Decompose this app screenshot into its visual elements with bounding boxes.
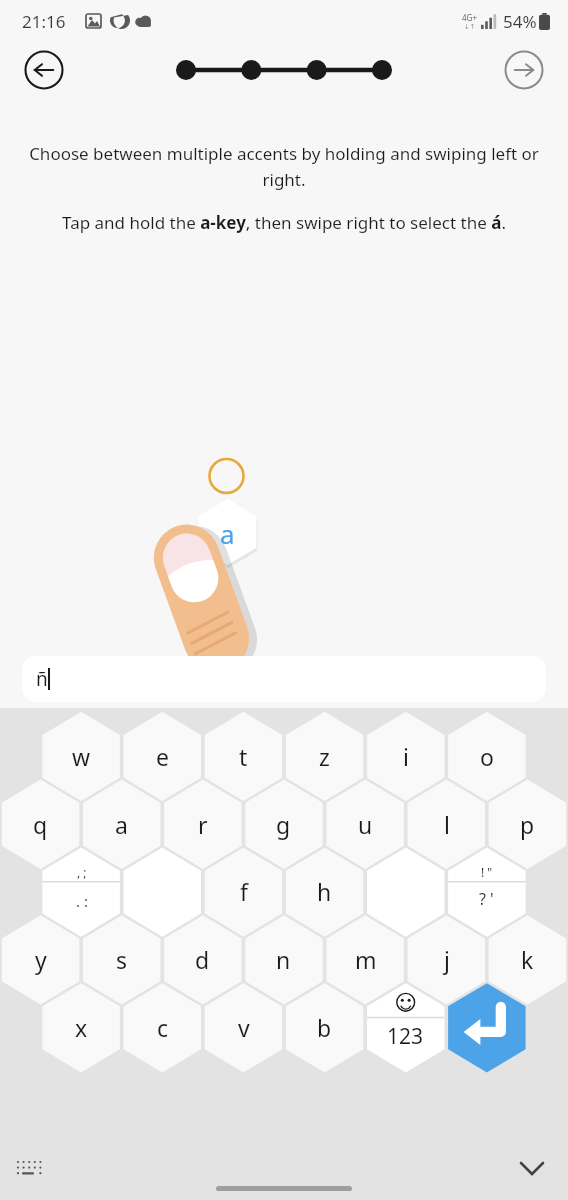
button[interactable]: u xyxy=(325,780,406,869)
button[interactable]: Hide keyboard xyxy=(512,1148,552,1188)
button[interactable]: v xyxy=(203,983,284,1072)
button[interactable]: q xyxy=(0,780,81,869)
staticText: 21:16 xyxy=(22,10,66,33)
button[interactable]: Back xyxy=(24,50,64,90)
staticText: 54% xyxy=(503,10,537,33)
button[interactable]: 123 xyxy=(365,983,446,1072)
button[interactable] xyxy=(41,847,122,936)
staticText: d xyxy=(195,944,210,975)
staticText: a xyxy=(220,516,235,550)
button[interactable]: h xyxy=(284,847,365,936)
staticText: 123 xyxy=(387,1022,424,1051)
button[interactable]: Switch keyboard xyxy=(12,1150,50,1188)
staticText: ! " xyxy=(481,864,493,880)
staticText: , ; xyxy=(77,864,87,880)
staticText: s xyxy=(116,944,128,975)
staticText: r xyxy=(198,809,208,840)
button[interactable]: y xyxy=(0,915,81,1004)
button[interactable]: j xyxy=(406,915,487,1004)
staticText: j xyxy=(444,944,450,975)
button[interactable]: c xyxy=(122,983,203,1072)
button[interactable]: x xyxy=(41,983,122,1072)
button[interactable]: t xyxy=(203,712,284,801)
button[interactable]: ñ xyxy=(22,656,546,702)
staticText: w xyxy=(72,741,91,772)
staticText: i xyxy=(403,741,409,772)
staticText: 4G+ xyxy=(462,12,477,23)
button[interactable]: Enter xyxy=(446,983,527,1072)
staticText: ↓↑ xyxy=(464,23,476,31)
button[interactable]: z xyxy=(284,712,365,801)
button[interactable]: i xyxy=(365,712,446,801)
staticText: y xyxy=(35,944,47,975)
button[interactable]: e xyxy=(122,712,203,801)
staticText: z xyxy=(319,741,330,772)
button[interactable]: k xyxy=(487,915,568,1004)
button[interactable]: a xyxy=(81,780,162,869)
staticText: x xyxy=(75,1012,88,1043)
button[interactable]: m xyxy=(325,915,406,1004)
staticText: e xyxy=(156,741,169,772)
button[interactable]: b xyxy=(284,983,365,1072)
button[interactable]: s xyxy=(81,915,162,1004)
staticText: n xyxy=(276,944,291,975)
button[interactable]: d xyxy=(162,915,243,1004)
button[interactable]: o xyxy=(446,712,527,801)
staticText: q xyxy=(33,809,48,840)
staticText: ñ xyxy=(36,666,48,692)
button[interactable]: f xyxy=(203,847,284,936)
staticText: Tap and hold the a-key, then swipe right… xyxy=(14,211,554,234)
button[interactable]: p xyxy=(487,780,568,869)
button[interactable]: Next xyxy=(504,50,544,90)
staticText: k xyxy=(521,944,534,975)
staticText: a xyxy=(115,809,128,840)
button[interactable]: r xyxy=(162,780,243,869)
staticText: f xyxy=(240,876,248,907)
button[interactable]: n xyxy=(243,915,324,1004)
button[interactable] xyxy=(446,847,527,936)
staticText: h xyxy=(317,876,332,907)
staticText: t xyxy=(239,741,248,772)
staticText: b xyxy=(317,1012,332,1043)
staticText: v xyxy=(238,1012,250,1043)
staticText: m xyxy=(355,944,377,975)
staticText: g xyxy=(276,809,291,840)
staticText: o xyxy=(480,741,494,772)
staticText: l xyxy=(444,809,450,840)
staticText: u xyxy=(358,809,373,840)
button[interactable]: w xyxy=(41,712,122,801)
staticText: ? ' xyxy=(479,888,494,910)
button[interactable]: g xyxy=(243,780,324,869)
staticText: Choose between multiple accents by holdi… xyxy=(28,142,540,191)
button[interactable]: l xyxy=(406,780,487,869)
staticText: c xyxy=(157,1012,169,1043)
staticText: p xyxy=(520,809,535,840)
staticText: . : xyxy=(76,891,88,911)
